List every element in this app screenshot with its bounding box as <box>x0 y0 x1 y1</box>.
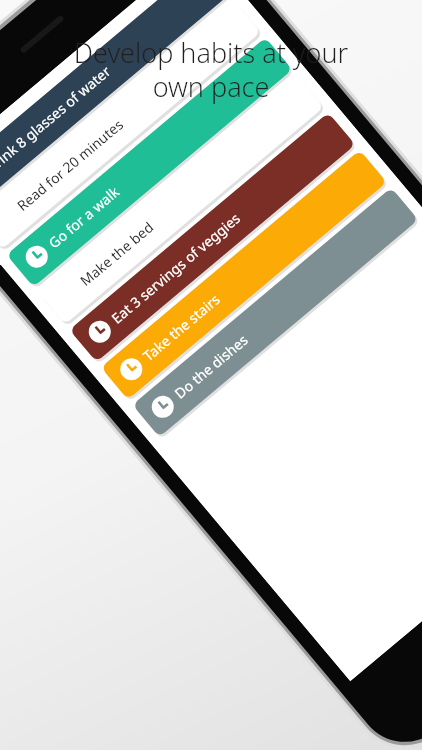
button[interactable]: Take the stairs <box>0 364 205 408</box>
button[interactable]: Make the bed <box>0 289 205 333</box>
button[interactable]: Drink 8 glasses of water <box>0 177 205 221</box>
button[interactable]: Eat 3 servings of veggies <box>0 327 205 371</box>
button[interactable]: Go for a walk <box>0 252 205 296</box>
button[interactable]: Do the dishes <box>0 402 205 446</box>
button[interactable]: Read for 20 minutes <box>0 214 205 258</box>
